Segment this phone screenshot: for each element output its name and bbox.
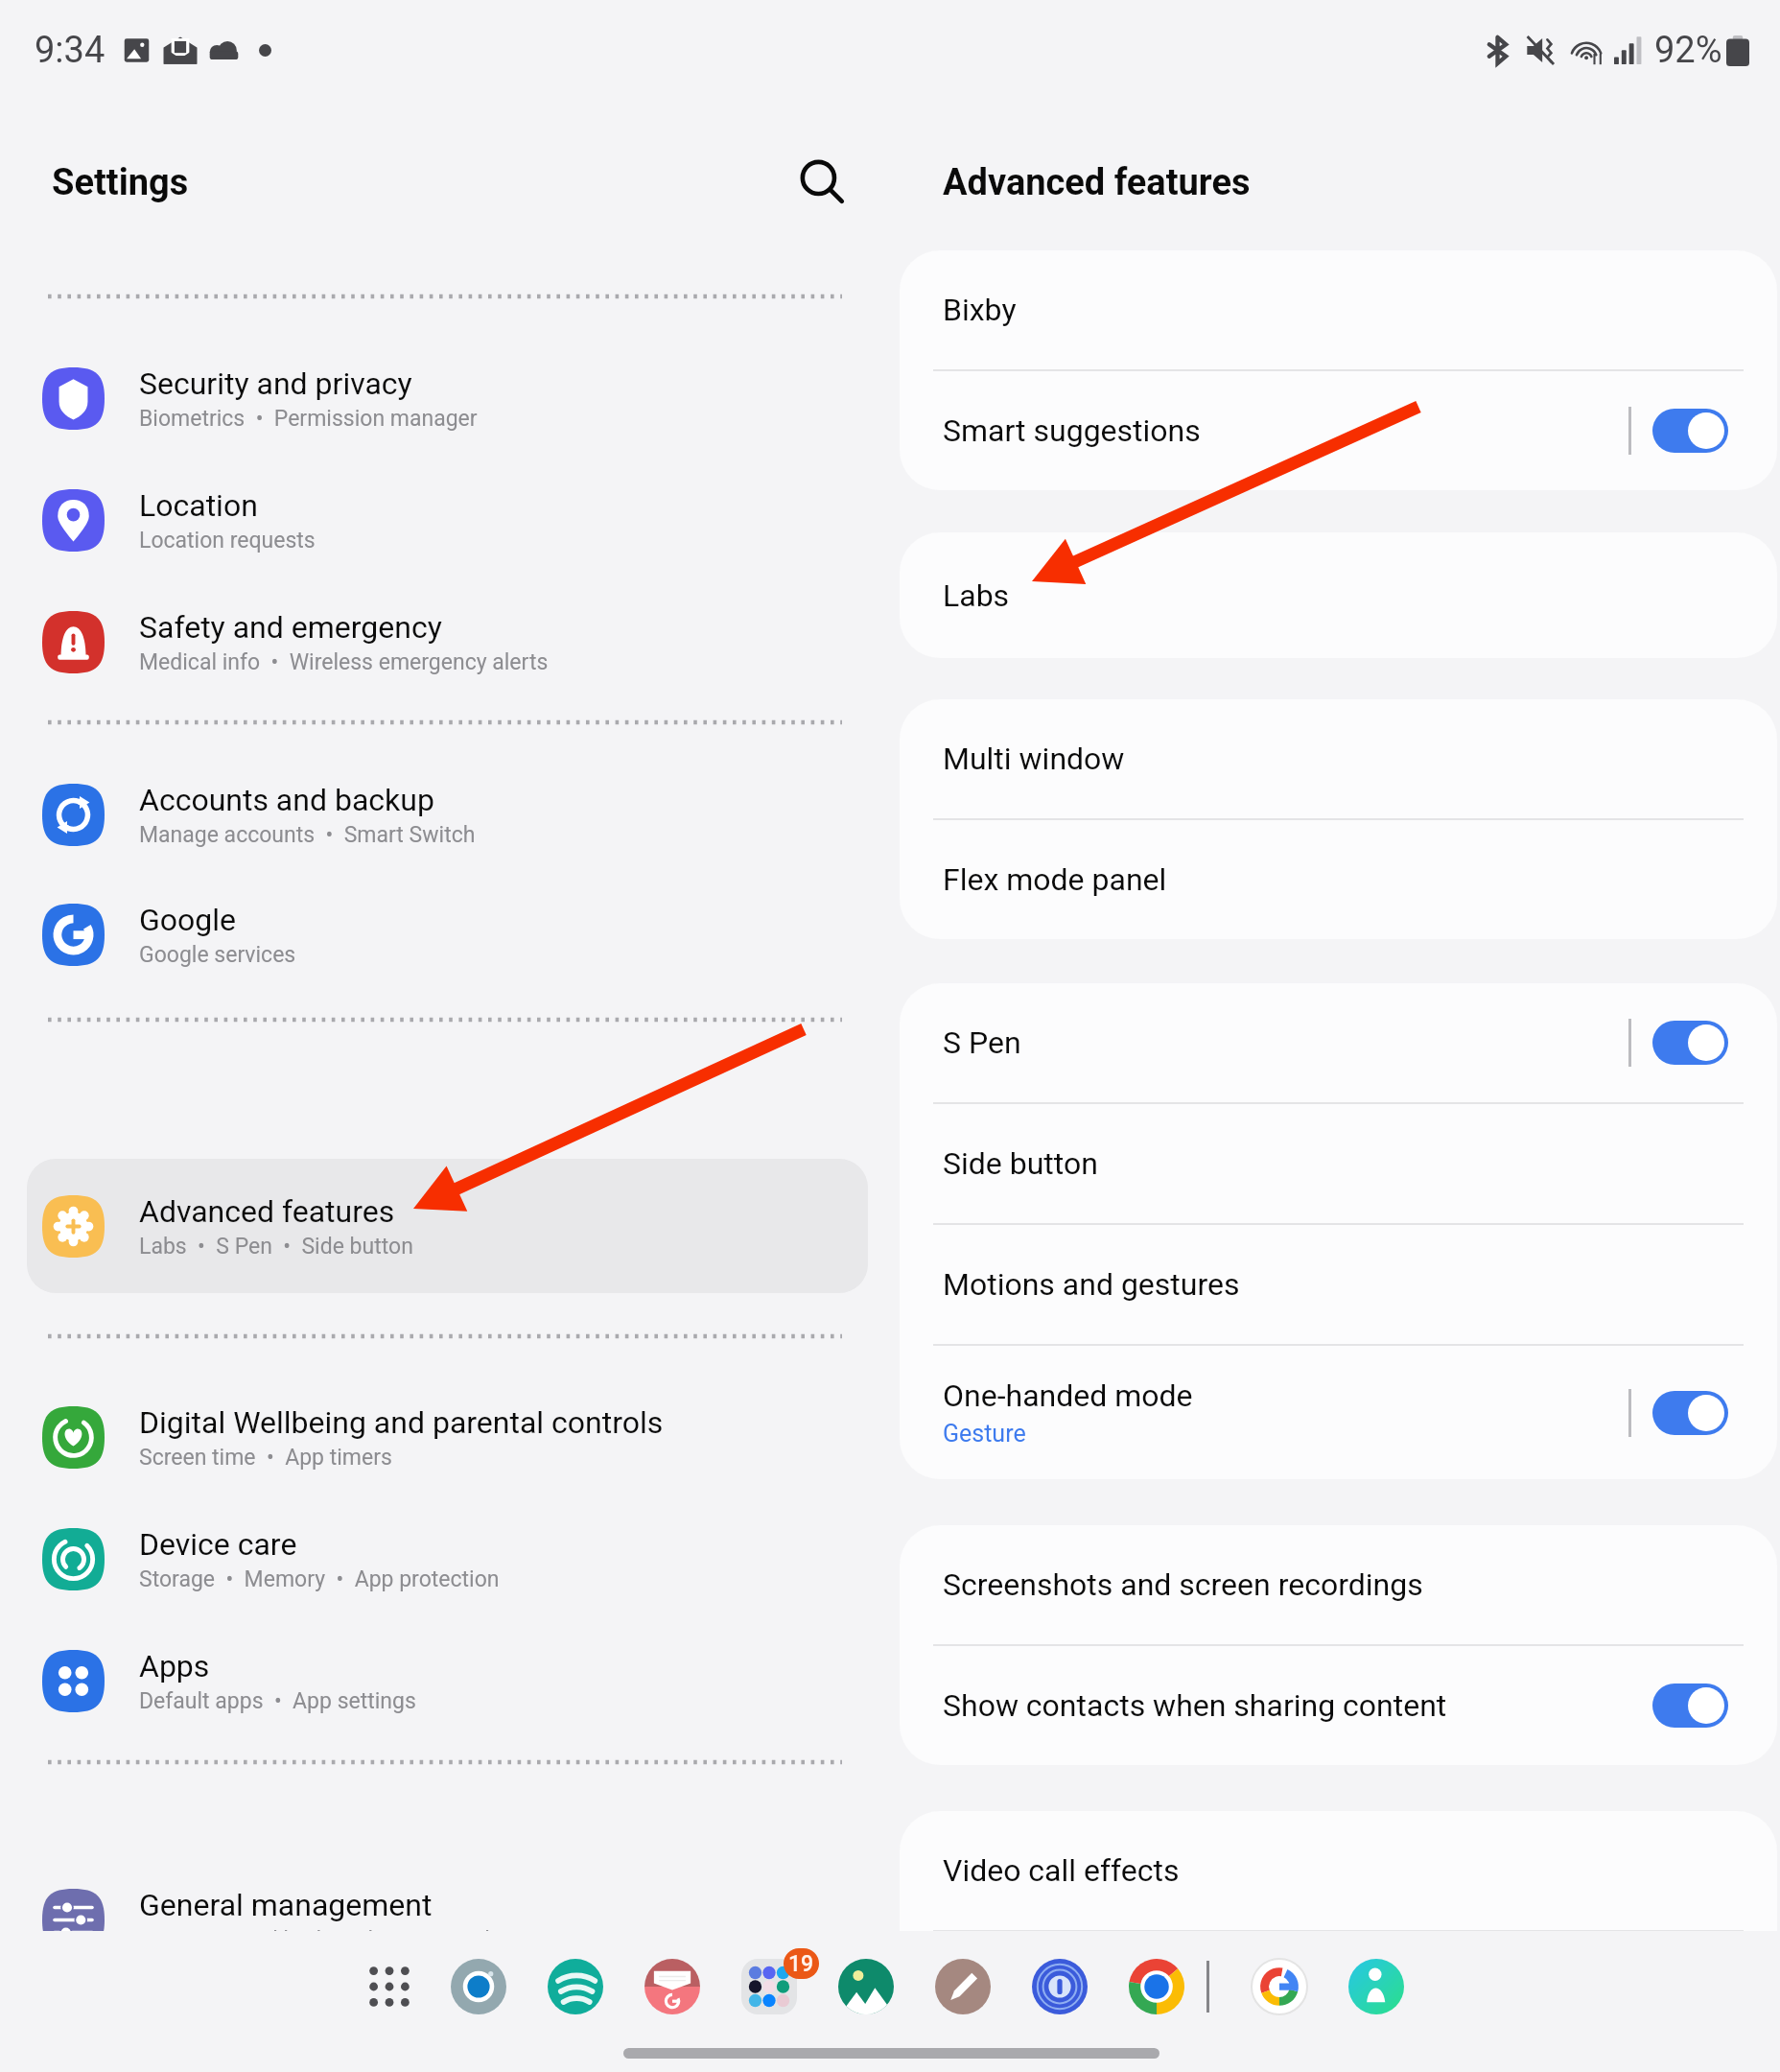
button[interactable]: Show contacts when sharing content [900, 1646, 1777, 1765]
staticText: Advanced features [943, 161, 1251, 204]
staticText: Biometrics • Permission manager [139, 406, 478, 432]
staticText: Motions and gestures [943, 1266, 1240, 1303]
staticText: Default apps • App settings [139, 1688, 416, 1714]
staticText: Bixby [943, 292, 1017, 328]
staticText: Apps [139, 1648, 210, 1684]
button[interactable]: Smart suggestions [900, 371, 1777, 490]
staticText: One-handed mode [943, 1377, 1193, 1414]
staticText: S Pen [943, 1024, 1021, 1061]
staticText: Google [139, 902, 237, 938]
button[interactable]: Notes [929, 1953, 996, 2020]
button[interactable]: Google [27, 867, 868, 1001]
staticText: Device care [139, 1526, 297, 1563]
staticText: Multi window [943, 741, 1125, 777]
button[interactable]: Camera [445, 1953, 512, 2020]
staticText: Safety and emergency [139, 609, 442, 646]
staticText: Location requests [139, 528, 316, 553]
staticText: Security and privacy [139, 365, 412, 402]
staticText: Settings [52, 161, 189, 204]
button[interactable]: Passwords [1026, 1953, 1093, 2020]
staticText: Location [139, 487, 258, 524]
button[interactable]: Multi window [900, 699, 1777, 818]
staticText: Smart suggestions [943, 412, 1201, 449]
button[interactable]: Apps [27, 1613, 868, 1748]
staticText: General management [139, 1887, 433, 1923]
button[interactable]: Folder [736, 1953, 803, 2020]
button[interactable]: Google [1246, 1953, 1313, 2020]
staticText: Labs • S Pen • Side button [139, 1234, 413, 1260]
staticText: Manage accounts • Smart Switch [139, 822, 476, 848]
button[interactable]: Apps [353, 1950, 426, 2023]
staticText: 19 [788, 1951, 814, 1977]
button[interactable]: Security and privacy [27, 331, 868, 465]
button[interactable]: S Pen [900, 983, 1777, 1102]
button[interactable]: Motions and gestures [900, 1225, 1777, 1344]
button[interactable]: Screenshots and screen recordings [900, 1525, 1777, 1644]
staticText: Advanced features [139, 1193, 395, 1230]
button[interactable]: Safety and emergency [27, 575, 868, 709]
staticText: 9:34 [35, 29, 105, 72]
button[interactable]: General management [27, 1852, 868, 1931]
button[interactable]: One-handed mode [900, 1346, 1777, 1479]
button[interactable]: Location [27, 453, 868, 587]
staticText: Video call effects [943, 1852, 1180, 1889]
button[interactable]: Spotify [542, 1953, 609, 2020]
button[interactable]: Digital Wellbeing and parental controls [27, 1370, 868, 1504]
button[interactable]: Device care [27, 1492, 868, 1626]
button[interactable]: Toggle S Pen [1652, 1021, 1728, 1065]
button[interactable]: Flex mode panel [900, 820, 1777, 939]
staticText: Side button [943, 1145, 1098, 1182]
staticText: Medical info • Wireless emergency alerts [139, 649, 549, 675]
button[interactable]: Side button [900, 1104, 1777, 1223]
button[interactable]: Bixby [900, 250, 1777, 369]
button[interactable]: Health [1343, 1953, 1410, 2020]
staticText: Screenshots and screen recordings [943, 1566, 1423, 1603]
staticText: Accounts and backup [139, 782, 434, 818]
staticText: Google services [139, 942, 296, 968]
staticText: Storage • Memory • App protection [139, 1566, 500, 1592]
button[interactable]: Search [782, 141, 864, 224]
staticText: Labs [943, 577, 1010, 614]
button[interactable]: Toggle Smart suggestions [1652, 409, 1728, 453]
button[interactable]: Advanced features [27, 1159, 868, 1293]
button[interactable]: Toggle One-handed mode [1652, 1391, 1728, 1435]
staticText: Digital Wellbeing and parental controls [139, 1404, 664, 1441]
button[interactable]: Gmail [639, 1953, 706, 2020]
staticText: Gesture [943, 1420, 1026, 1448]
button[interactable]: Video call effects [900, 1811, 1777, 1930]
button[interactable]: Gallery [832, 1953, 900, 2020]
staticText: Language and keyboard • Date and time [139, 1927, 539, 1931]
button[interactable]: Toggle Show contacts when sharing conten… [1652, 1683, 1728, 1728]
staticText: Show contacts when sharing content [943, 1687, 1447, 1724]
staticText: Screen time • App timers [139, 1445, 392, 1471]
button[interactable]: Accounts and backup [27, 747, 868, 882]
button[interactable]: Labs [900, 532, 1777, 658]
button[interactable]: Chrome [1123, 1953, 1190, 2020]
staticText: 92% [1654, 29, 1722, 72]
staticText: Flex mode panel [943, 861, 1167, 898]
